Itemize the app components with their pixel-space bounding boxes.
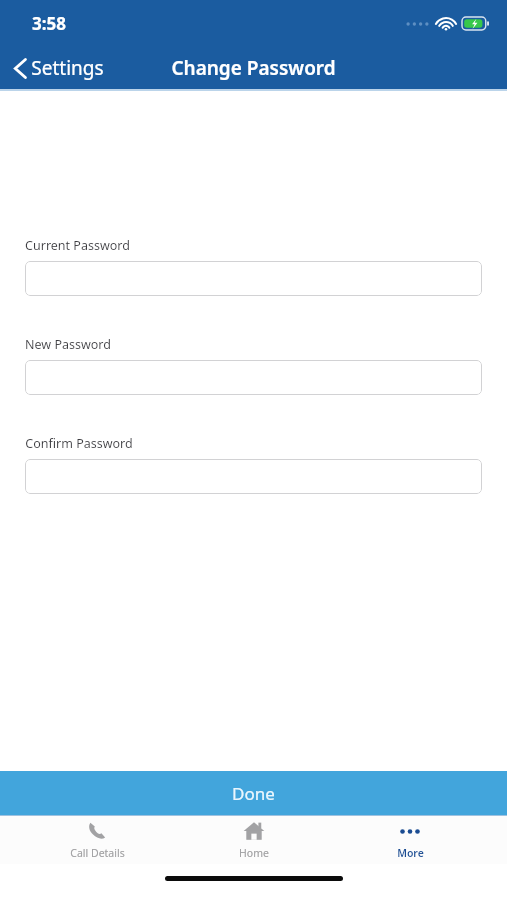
button[interactable]: Call Details: [37, 816, 157, 864]
staticText: Home: [239, 846, 269, 860]
button[interactable]: Done: [0, 771, 507, 815]
button[interactable]: Settings: [0, 51, 114, 85]
staticText: Confirm Password: [25, 435, 133, 452]
button[interactable]: Home: [194, 816, 314, 864]
staticText: More: [397, 846, 424, 860]
button[interactable]: [25, 459, 482, 494]
other: Home: [243, 820, 265, 842]
other: More: [399, 820, 421, 842]
staticText: Done: [232, 782, 275, 805]
button[interactable]: More: [350, 816, 470, 864]
staticText: Current Password: [25, 237, 130, 254]
staticText: Call Details: [70, 846, 125, 860]
staticText: New Password: [25, 336, 111, 353]
button[interactable]: [25, 261, 482, 296]
staticText: 3:58: [32, 12, 66, 35]
staticText: Settings: [31, 55, 104, 81]
button[interactable]: [25, 360, 482, 395]
other: Call Details: [86, 820, 108, 842]
staticText: Change Password: [171, 55, 336, 81]
